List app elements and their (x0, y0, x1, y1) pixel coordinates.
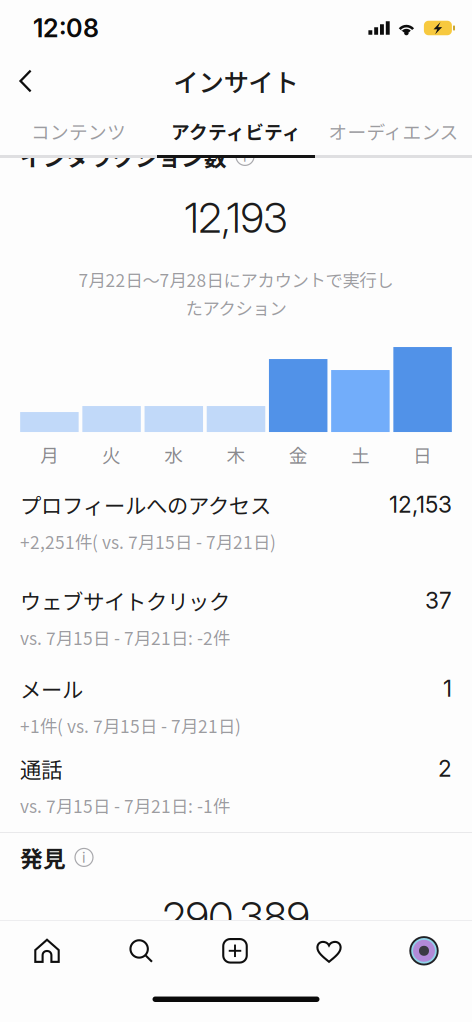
staticText: ウェブサイトクリック (20, 585, 230, 616)
button[interactable]: 作成 (188, 921, 282, 981)
button[interactable]: ウェブサイトクリック (0, 585, 472, 650)
staticText: 7月22日〜7月28日にアカウントで実行し (78, 267, 393, 292)
button[interactable]: アクティビティ (157, 107, 315, 155)
staticText: 発見 (20, 841, 66, 874)
button[interactable]: ホーム (0, 921, 94, 981)
button[interactable]: メール (0, 673, 472, 738)
button[interactable]: プロフィール (376, 921, 472, 981)
staticText: i (243, 147, 247, 165)
staticText: +2,251件( vs. 7月15日 - 7月21日) (20, 529, 276, 554)
staticText: 木 (226, 441, 245, 468)
staticText: 37 (425, 587, 452, 614)
button[interactable]: プロフィールへのアクセス (0, 489, 472, 554)
staticText: 1 (443, 675, 452, 702)
staticText: アクティビティ (171, 117, 301, 144)
staticText: 金 (289, 441, 308, 468)
staticText: 12,153 (389, 491, 452, 518)
button[interactable]: 通話 (0, 753, 472, 818)
staticText: 290,389 (162, 892, 309, 942)
staticText: 通話 (20, 753, 62, 784)
button[interactable]: いいね (282, 921, 376, 981)
button[interactable]: 戻る (0, 55, 49, 107)
staticText: 2 (438, 755, 452, 782)
staticText: 12:08 (33, 13, 99, 43)
staticText: メール (20, 673, 83, 704)
staticText: 土 (351, 441, 370, 468)
staticText: 12,193 (184, 193, 287, 243)
staticText: オーディエンス (328, 117, 458, 144)
staticText: vs. 7月15日 - 7月21日: -2件 (20, 625, 230, 650)
staticText: 火 (102, 441, 121, 468)
staticText: 水 (164, 441, 183, 468)
button[interactable]: 検索 (94, 921, 188, 981)
staticText: +1件( vs. 7月15日 - 7月21日) (20, 713, 241, 738)
staticText: 日 (413, 441, 432, 468)
button[interactable]: コンテンツ (0, 107, 157, 155)
staticText: インサイト (173, 63, 298, 99)
staticText: プロフィールへのアクセス (20, 489, 271, 520)
staticText: たアクション (185, 295, 286, 320)
staticText: インタラクション数 (20, 140, 227, 173)
staticText: vs. 7月15日 - 7月21日: -1件 (20, 793, 230, 818)
staticText: コンテンツ (31, 117, 126, 144)
staticText: 月 (40, 441, 59, 468)
staticText: i (82, 849, 86, 866)
button[interactable]: オーディエンス (315, 107, 472, 155)
